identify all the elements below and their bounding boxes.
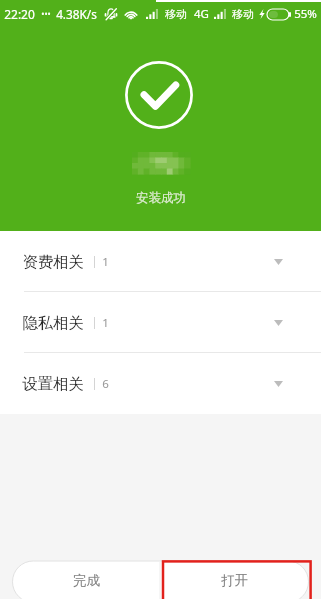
button[interactable]: 隐私相关 (0, 292, 321, 353)
staticText: 1 (102, 315, 109, 331)
staticText: 打开 (221, 572, 248, 589)
button[interactable]: 设置相关 (0, 353, 321, 414)
staticText: 资费相关 (22, 252, 84, 271)
staticText: 隐私相关 (22, 313, 84, 332)
other: Wi-Fi (124, 9, 138, 20)
staticText: 4G (194, 6, 209, 22)
staticText: 安装成功 (136, 190, 186, 206)
other: Silent mode (104, 7, 118, 21)
staticText: 设置相关 (22, 374, 84, 393)
button[interactable]: 完成 (13, 561, 160, 599)
staticText: 完成 (73, 572, 100, 589)
button[interactable]: 打开 (160, 561, 308, 599)
staticText: 6 (102, 376, 109, 392)
staticText: 1 (102, 254, 109, 270)
staticText: 移动 (232, 7, 254, 21)
button[interactable]: 资费相关 (0, 231, 321, 292)
staticText: 移动 (165, 7, 187, 21)
other: Signal strength (146, 9, 158, 19)
staticText: 22:20 (4, 6, 35, 22)
staticText: ••• (41, 8, 51, 20)
other: Signal strength (214, 9, 226, 19)
staticText: 55% (294, 6, 317, 22)
staticText: 4.38K/s (56, 6, 97, 22)
other: Battery 55 percent (267, 9, 291, 20)
